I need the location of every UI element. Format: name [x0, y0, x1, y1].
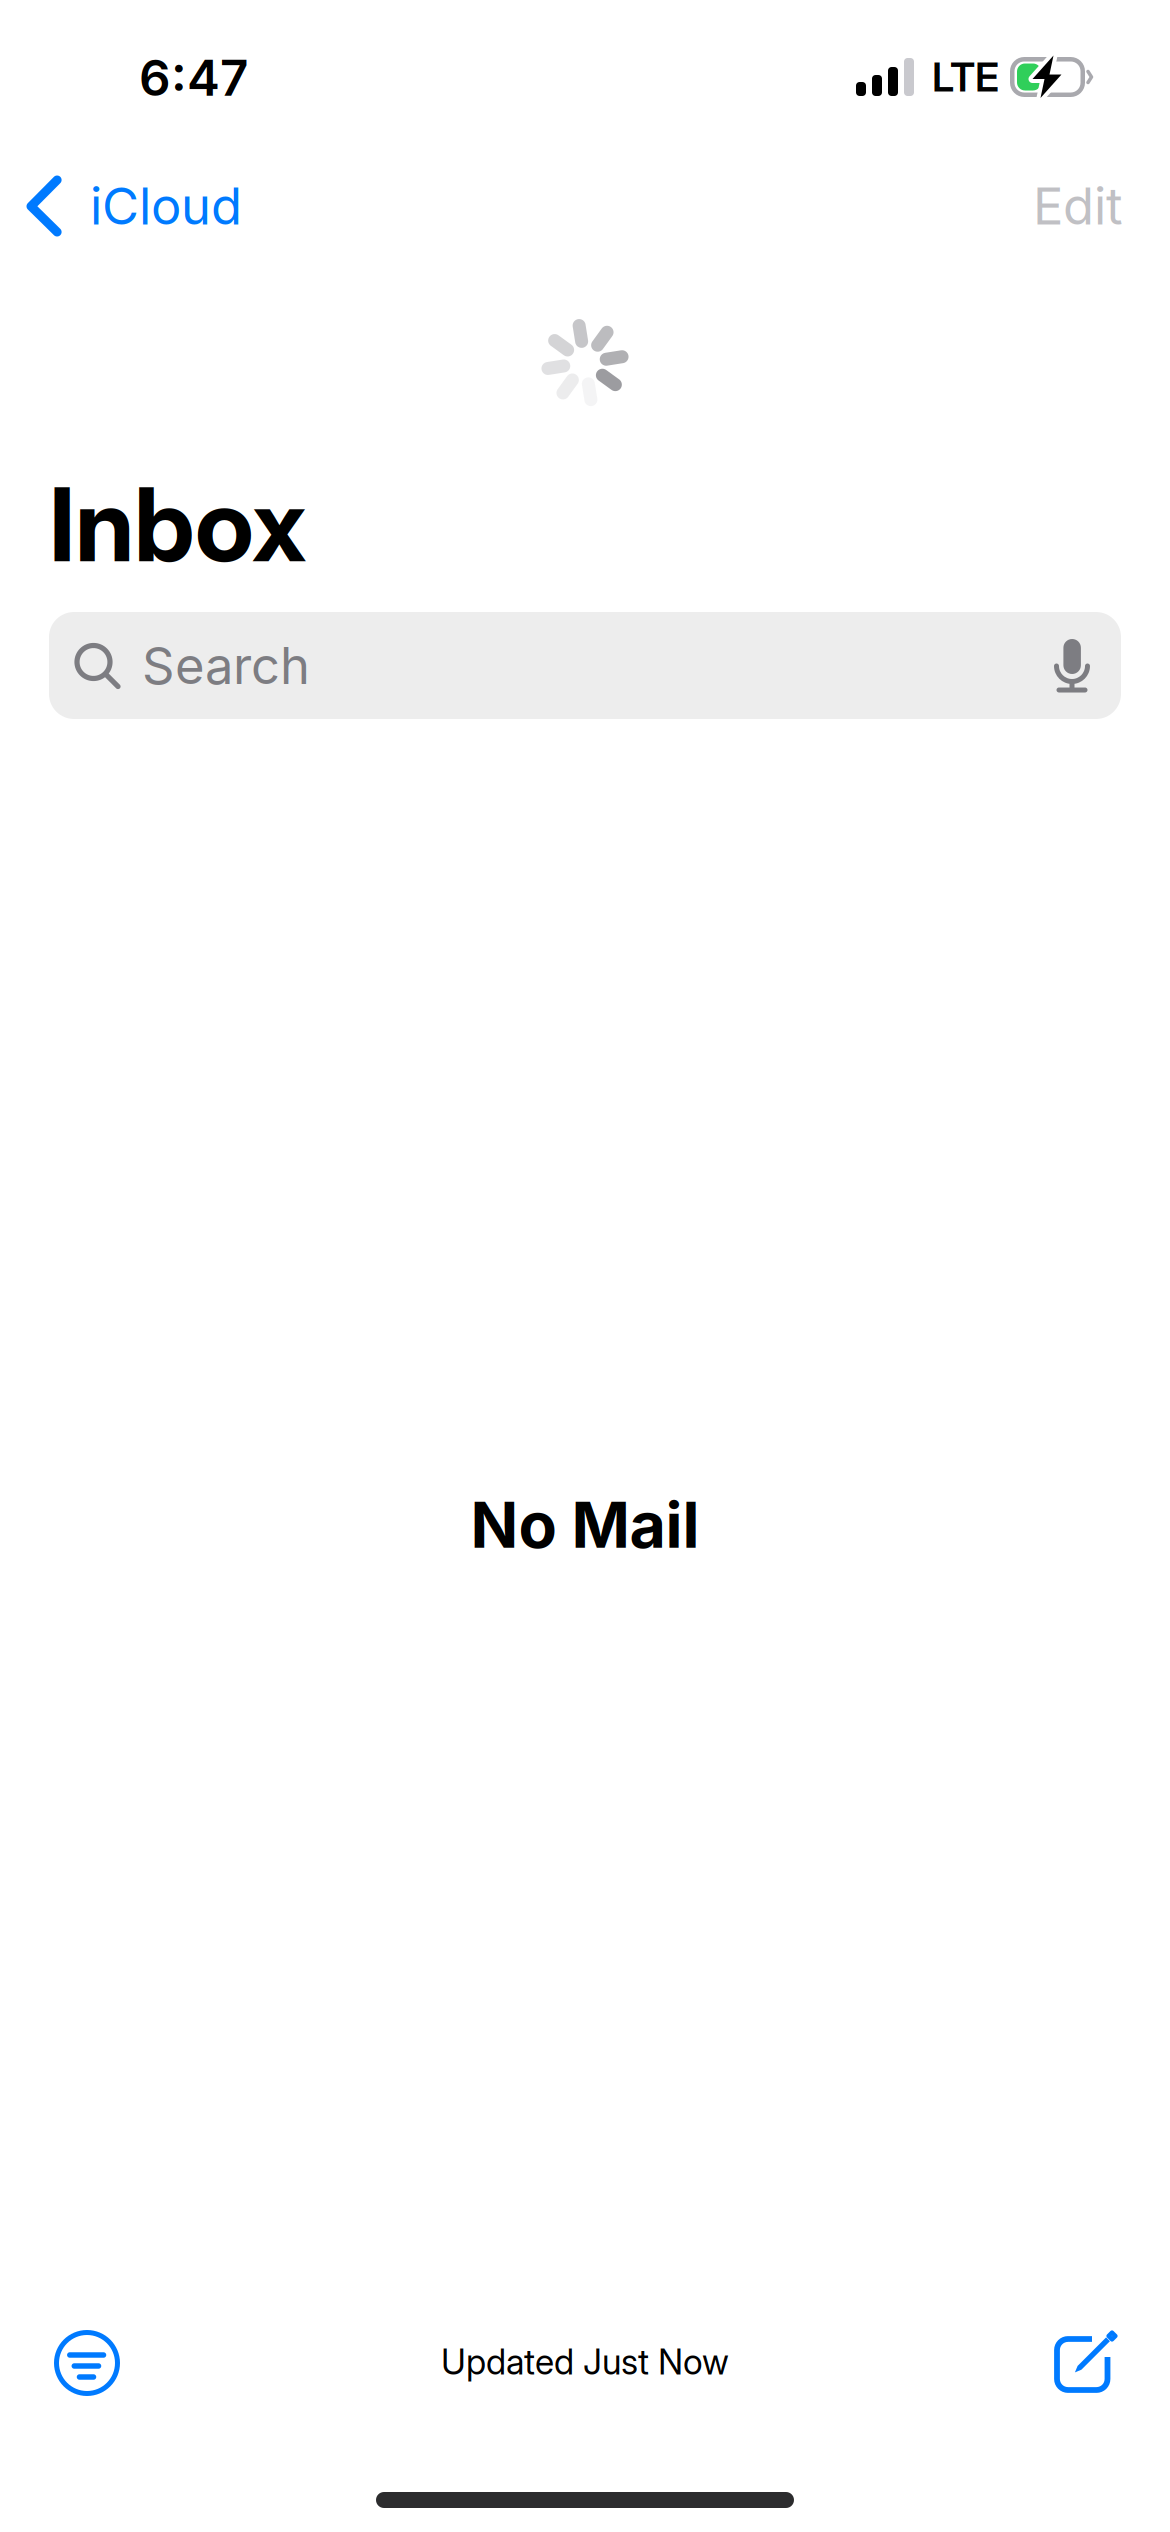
button[interactable]: Filter — [0, 2304, 164, 2422]
staticText: iCloud — [90, 175, 242, 237]
staticText: Edit — [1033, 175, 1123, 237]
button[interactable]: Edit — [987, 158, 1170, 254]
staticText: No Mail — [470, 1487, 699, 1563]
staticText: Search — [142, 635, 310, 696]
button[interactable]: Compose — [1010, 2302, 1170, 2422]
staticText: 6:47 — [139, 48, 248, 108]
staticText: Updated Just Now — [441, 2341, 729, 2383]
staticText: LTE — [932, 53, 999, 101]
button[interactable]: Search — [49, 612, 1121, 719]
button[interactable]: iCloud — [0, 158, 268, 254]
staticText: Inbox — [49, 463, 306, 586]
